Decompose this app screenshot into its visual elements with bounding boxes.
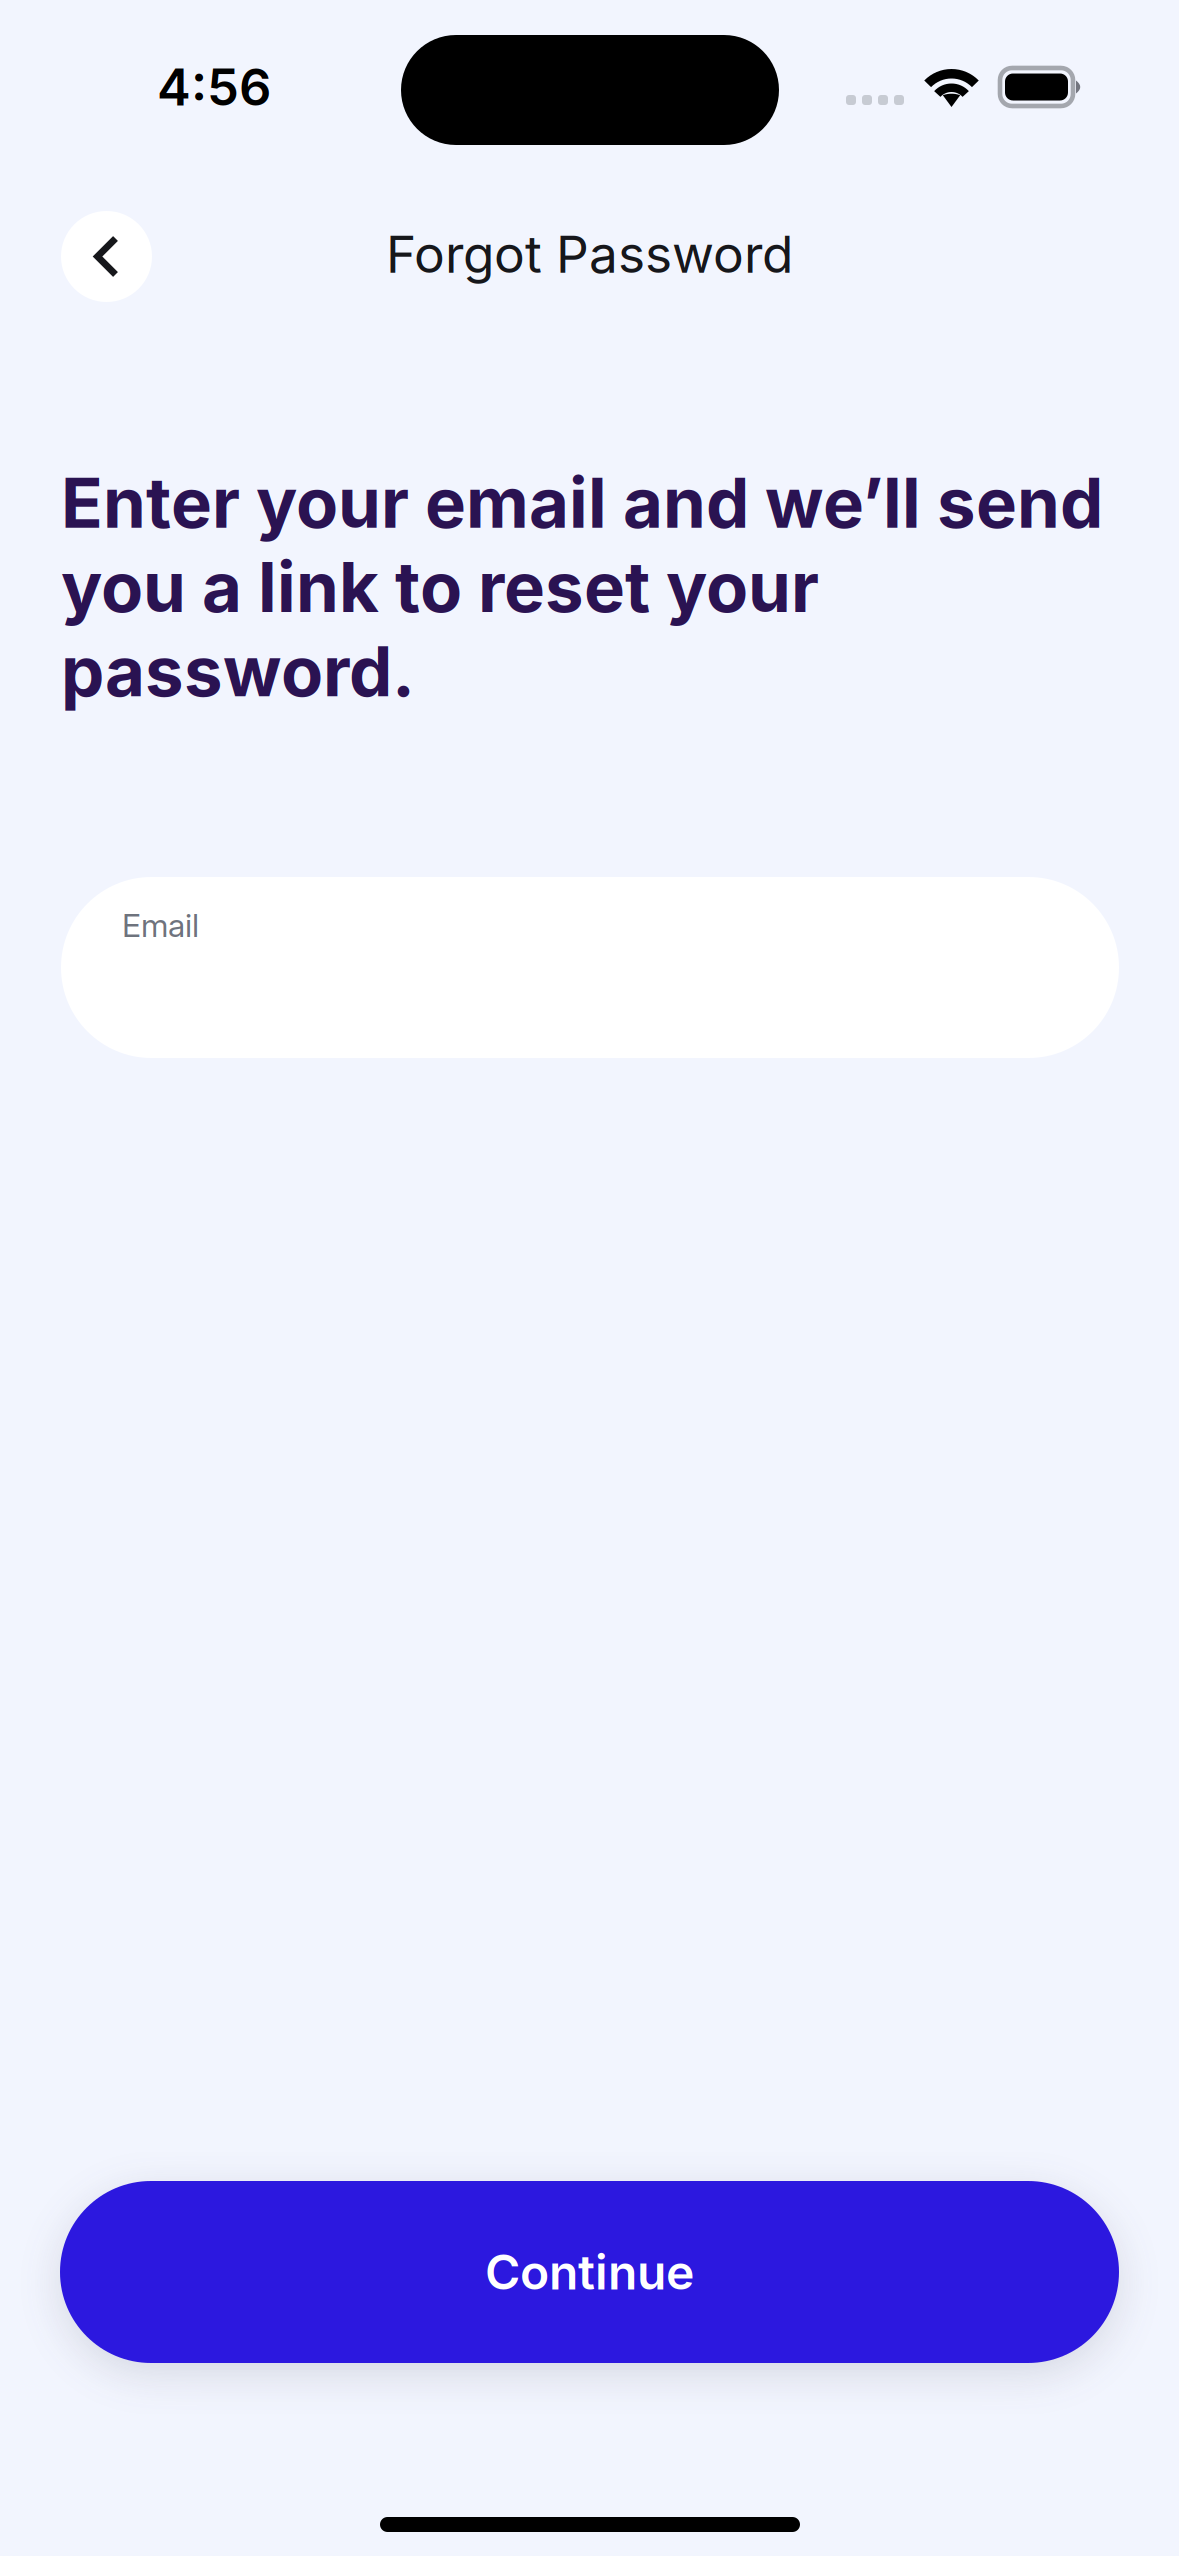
staticText: 4:56 bbox=[157, 56, 271, 118]
staticText: Forgot Password bbox=[386, 223, 793, 285]
button[interactable]: Email bbox=[61, 877, 1119, 1058]
staticText: Email bbox=[122, 906, 199, 945]
button[interactable]: Back bbox=[61, 211, 152, 302]
button[interactable]: Continue bbox=[60, 2181, 1119, 2363]
staticText: Continue bbox=[485, 2243, 694, 2301]
staticText: Enter your email and we’ll send you a li… bbox=[61, 461, 1103, 713]
